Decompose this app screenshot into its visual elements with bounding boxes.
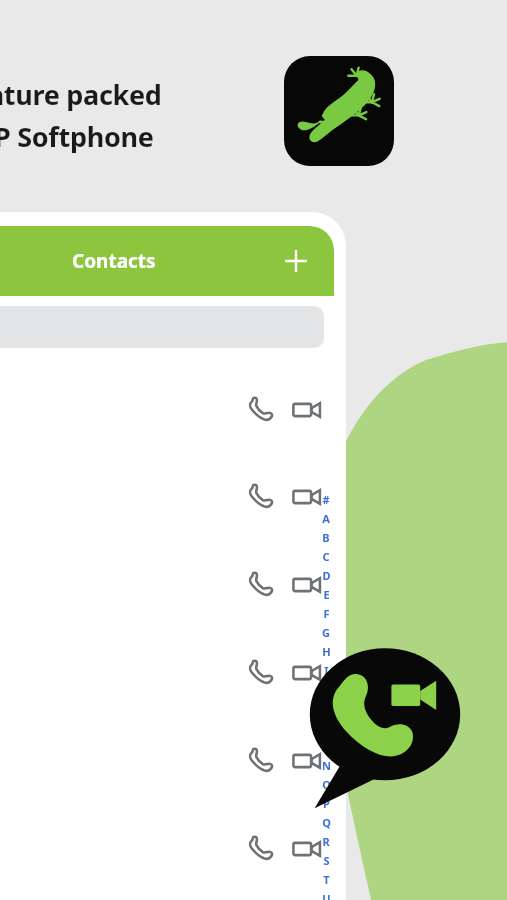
staticText: A — [322, 511, 330, 526]
staticText: Contacts — [72, 248, 156, 274]
staticText: G — [322, 625, 330, 640]
staticText: Q — [322, 815, 331, 830]
staticText: I — [324, 663, 329, 678]
button[interactable]: Audio call Emma — [242, 656, 276, 690]
staticText: O — [322, 777, 331, 792]
button[interactable]: Alphabet index — [315, 490, 334, 900]
staticText: F — [323, 606, 330, 621]
staticText: P Softphone — [0, 118, 154, 155]
staticText: D — [322, 568, 331, 583]
button[interactable]: Video call Joanne — [290, 744, 324, 778]
button[interactable]: Video call Chris — [290, 480, 324, 514]
button[interactable]: Audio call Chris — [242, 480, 276, 514]
button[interactable]: Chris — [0, 458, 334, 536]
staticText: B — [322, 530, 330, 545]
button[interactable]: Joanne — [0, 722, 334, 800]
staticText: # — [322, 492, 330, 507]
button[interactable]: Audio call Alexis — [242, 393, 276, 427]
staticText: N — [322, 758, 331, 773]
button[interactable]: Audio call Daniel — [242, 568, 276, 602]
button[interactable]: Video call Alexis — [290, 393, 324, 427]
staticText: M — [321, 739, 332, 754]
button[interactable]: Marcus — [0, 810, 334, 888]
button[interactable]: Audio call Joanne — [242, 744, 276, 778]
button[interactable]: Video call Emma — [290, 656, 324, 690]
staticText: P — [323, 796, 330, 811]
button[interactable]: Audio call Marcus — [242, 832, 276, 866]
button[interactable]: Add contact — [274, 239, 318, 283]
staticText: ature packed — [0, 76, 162, 113]
staticText: T — [323, 872, 330, 887]
button[interactable]: Daniel — [0, 546, 334, 624]
staticText: S — [323, 853, 330, 868]
button[interactable]: Voice and video call — [305, 645, 465, 810]
staticText: C — [322, 549, 330, 564]
staticText: R — [322, 834, 330, 849]
button[interactable]: Video call Marcus — [290, 832, 324, 866]
button[interactable]: Alexis — [0, 371, 334, 449]
button[interactable]: App icon — [284, 56, 394, 166]
staticText: H — [322, 644, 331, 659]
staticText: U — [322, 891, 331, 900]
button[interactable]: Emma — [0, 634, 334, 712]
button[interactable]: Video call Daniel — [290, 568, 324, 602]
staticText: E — [323, 587, 330, 602]
